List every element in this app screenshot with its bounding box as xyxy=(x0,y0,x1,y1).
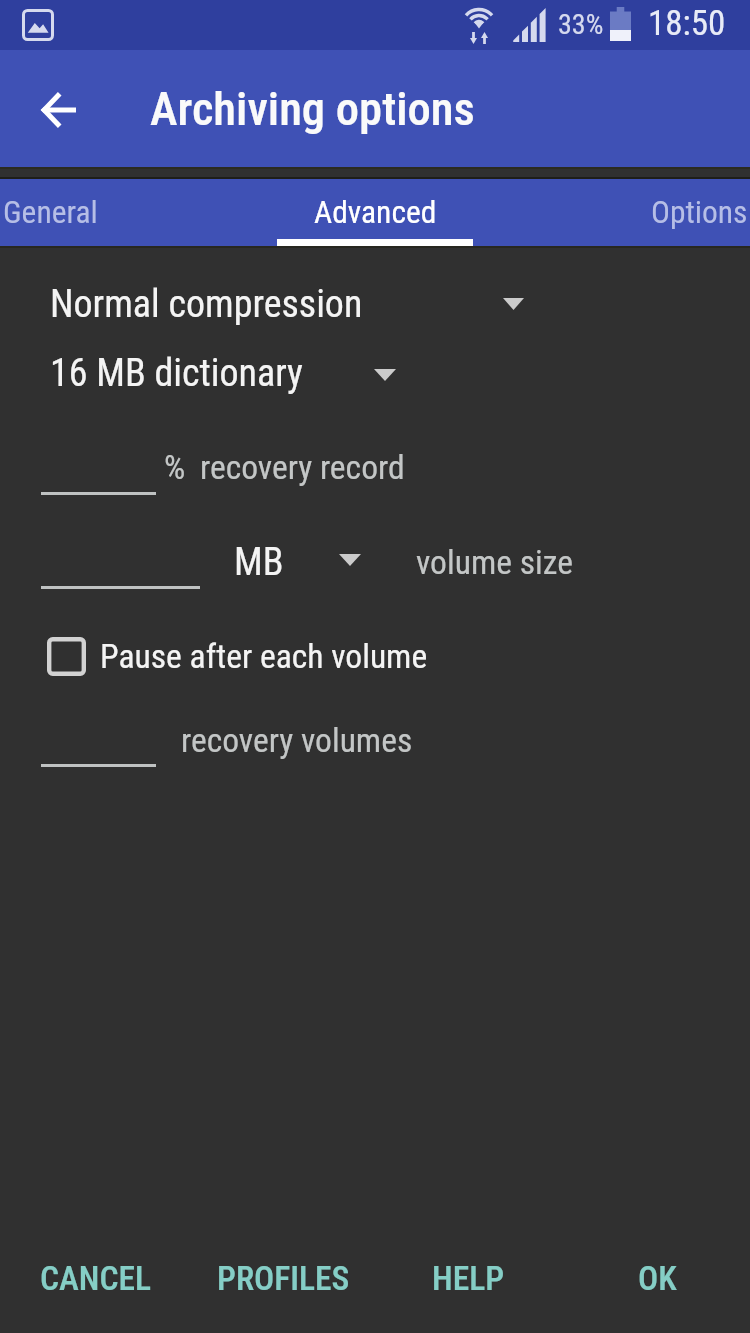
other: Screenshot captured xyxy=(22,9,54,41)
staticText: recovery record xyxy=(200,448,405,487)
staticText: PROFILES xyxy=(217,1259,350,1298)
staticText: recovery volumes xyxy=(181,721,413,760)
button[interactable]: Navigate up xyxy=(18,50,98,167)
staticText: 18:50 xyxy=(648,3,726,44)
staticText: Advanced xyxy=(314,194,437,231)
staticText: MB xyxy=(234,540,284,585)
button[interactable]: OK xyxy=(616,1245,699,1312)
button[interactable]: PROFILES xyxy=(195,1245,372,1312)
staticText: OK xyxy=(638,1259,677,1298)
button[interactable]: General xyxy=(0,179,212,246)
staticText: Options xyxy=(651,194,748,231)
button[interactable]: Normal compression xyxy=(0,276,750,332)
button[interactable]: Options xyxy=(537,179,750,246)
staticText: Archiving options xyxy=(150,82,475,136)
button[interactable]: 16 MB dictionary xyxy=(0,345,750,401)
staticText: HELP xyxy=(432,1259,505,1298)
staticText: % xyxy=(164,448,186,487)
staticText: volume size xyxy=(416,543,573,582)
button[interactable]: Advanced xyxy=(213,179,537,246)
button[interactable]: HELP xyxy=(410,1245,527,1312)
staticText: Normal compression xyxy=(50,282,363,327)
staticText: General xyxy=(3,194,98,231)
staticText: Pause after each volume xyxy=(100,637,428,676)
button[interactable]: Pause after each volume xyxy=(0,628,750,684)
staticText: 16 MB dictionary xyxy=(50,351,303,396)
staticText: 33% xyxy=(558,8,604,41)
button[interactable]: CANCEL xyxy=(18,1245,174,1312)
staticText: CANCEL xyxy=(40,1259,152,1298)
